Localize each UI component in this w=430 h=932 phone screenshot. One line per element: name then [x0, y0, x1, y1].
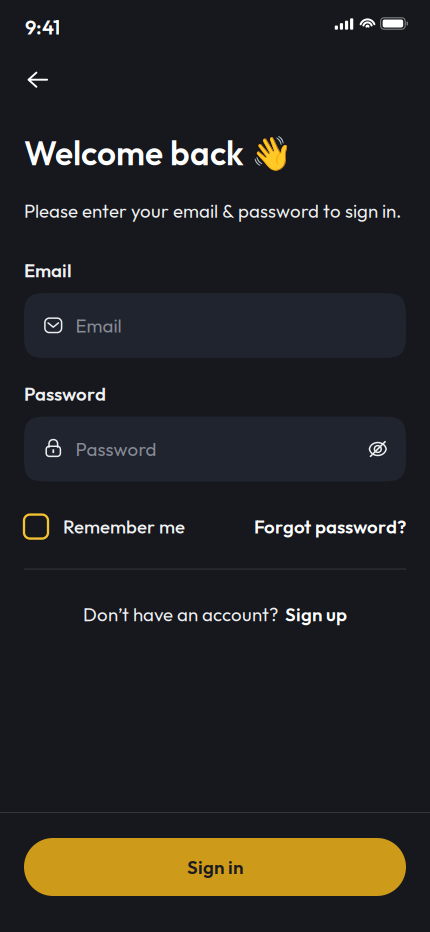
button[interactable]: Back — [16, 58, 60, 102]
staticText: Password — [76, 437, 157, 461]
staticText: Forgot password? — [254, 515, 406, 538]
staticText: Please enter your email & password to si… — [24, 199, 401, 222]
staticText: Sign up — [285, 603, 347, 626]
staticText: Remember me — [63, 515, 185, 538]
staticText: Don’t have an account? — [83, 603, 278, 626]
staticText: Email — [24, 258, 72, 282]
staticText: 9:41 — [25, 14, 60, 40]
button[interactable]: Email — [24, 293, 406, 358]
button[interactable]: Remember me — [24, 515, 187, 539]
button[interactable]: Sign in — [24, 838, 406, 896]
staticText: Email — [75, 314, 121, 337]
staticText: Welcome back 👋 — [24, 132, 293, 174]
staticText: Password — [24, 382, 106, 405]
button[interactable]: Password — [24, 417, 406, 482]
staticText: Sign in — [187, 855, 243, 879]
button[interactable]: Sign up — [285, 603, 347, 626]
button[interactable]: Forgot password? — [254, 515, 406, 538]
